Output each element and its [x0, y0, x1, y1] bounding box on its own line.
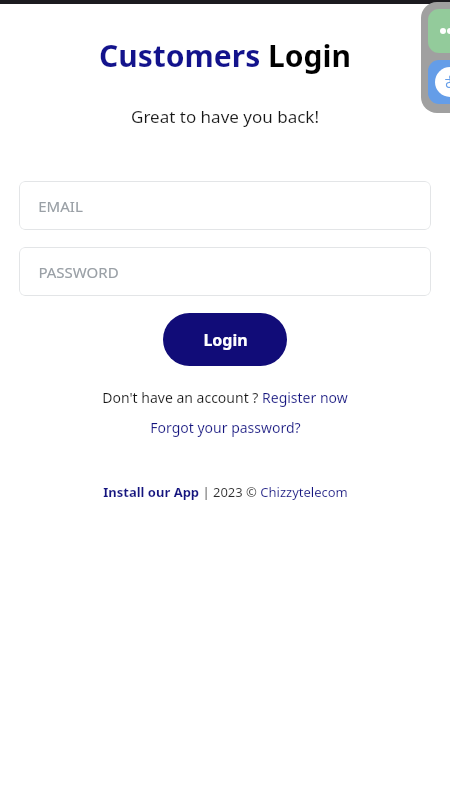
staticText: Login [203, 329, 248, 351]
button[interactable]: PASSWORD [19, 247, 431, 296]
staticText: Install our App | 2023 © Chizzytelecom [103, 483, 348, 501]
staticText: टी [445, 73, 450, 92]
staticText: Don't have an account ? Register now [102, 388, 348, 407]
button[interactable]: Forgot your password? [146, 416, 305, 439]
button[interactable]: Translate [428, 60, 450, 104]
button[interactable]: Messages [428, 9, 450, 53]
staticText: PASSWORD [38, 262, 119, 282]
staticText: Forgot your password? [150, 418, 301, 437]
button[interactable]: Login [163, 313, 287, 366]
button[interactable]: EMAIL [19, 181, 431, 230]
staticText: EMAIL [38, 196, 83, 216]
button[interactable]: Floating chat bubbles [421, 2, 450, 113]
staticText: Customers Login [99, 35, 351, 76]
button[interactable]: Don't have an account ? Register now [98, 386, 352, 409]
staticText: Great to have you back! [131, 105, 319, 128]
button[interactable]: Install our App | 2023 © Chizzytelecom [99, 481, 352, 503]
